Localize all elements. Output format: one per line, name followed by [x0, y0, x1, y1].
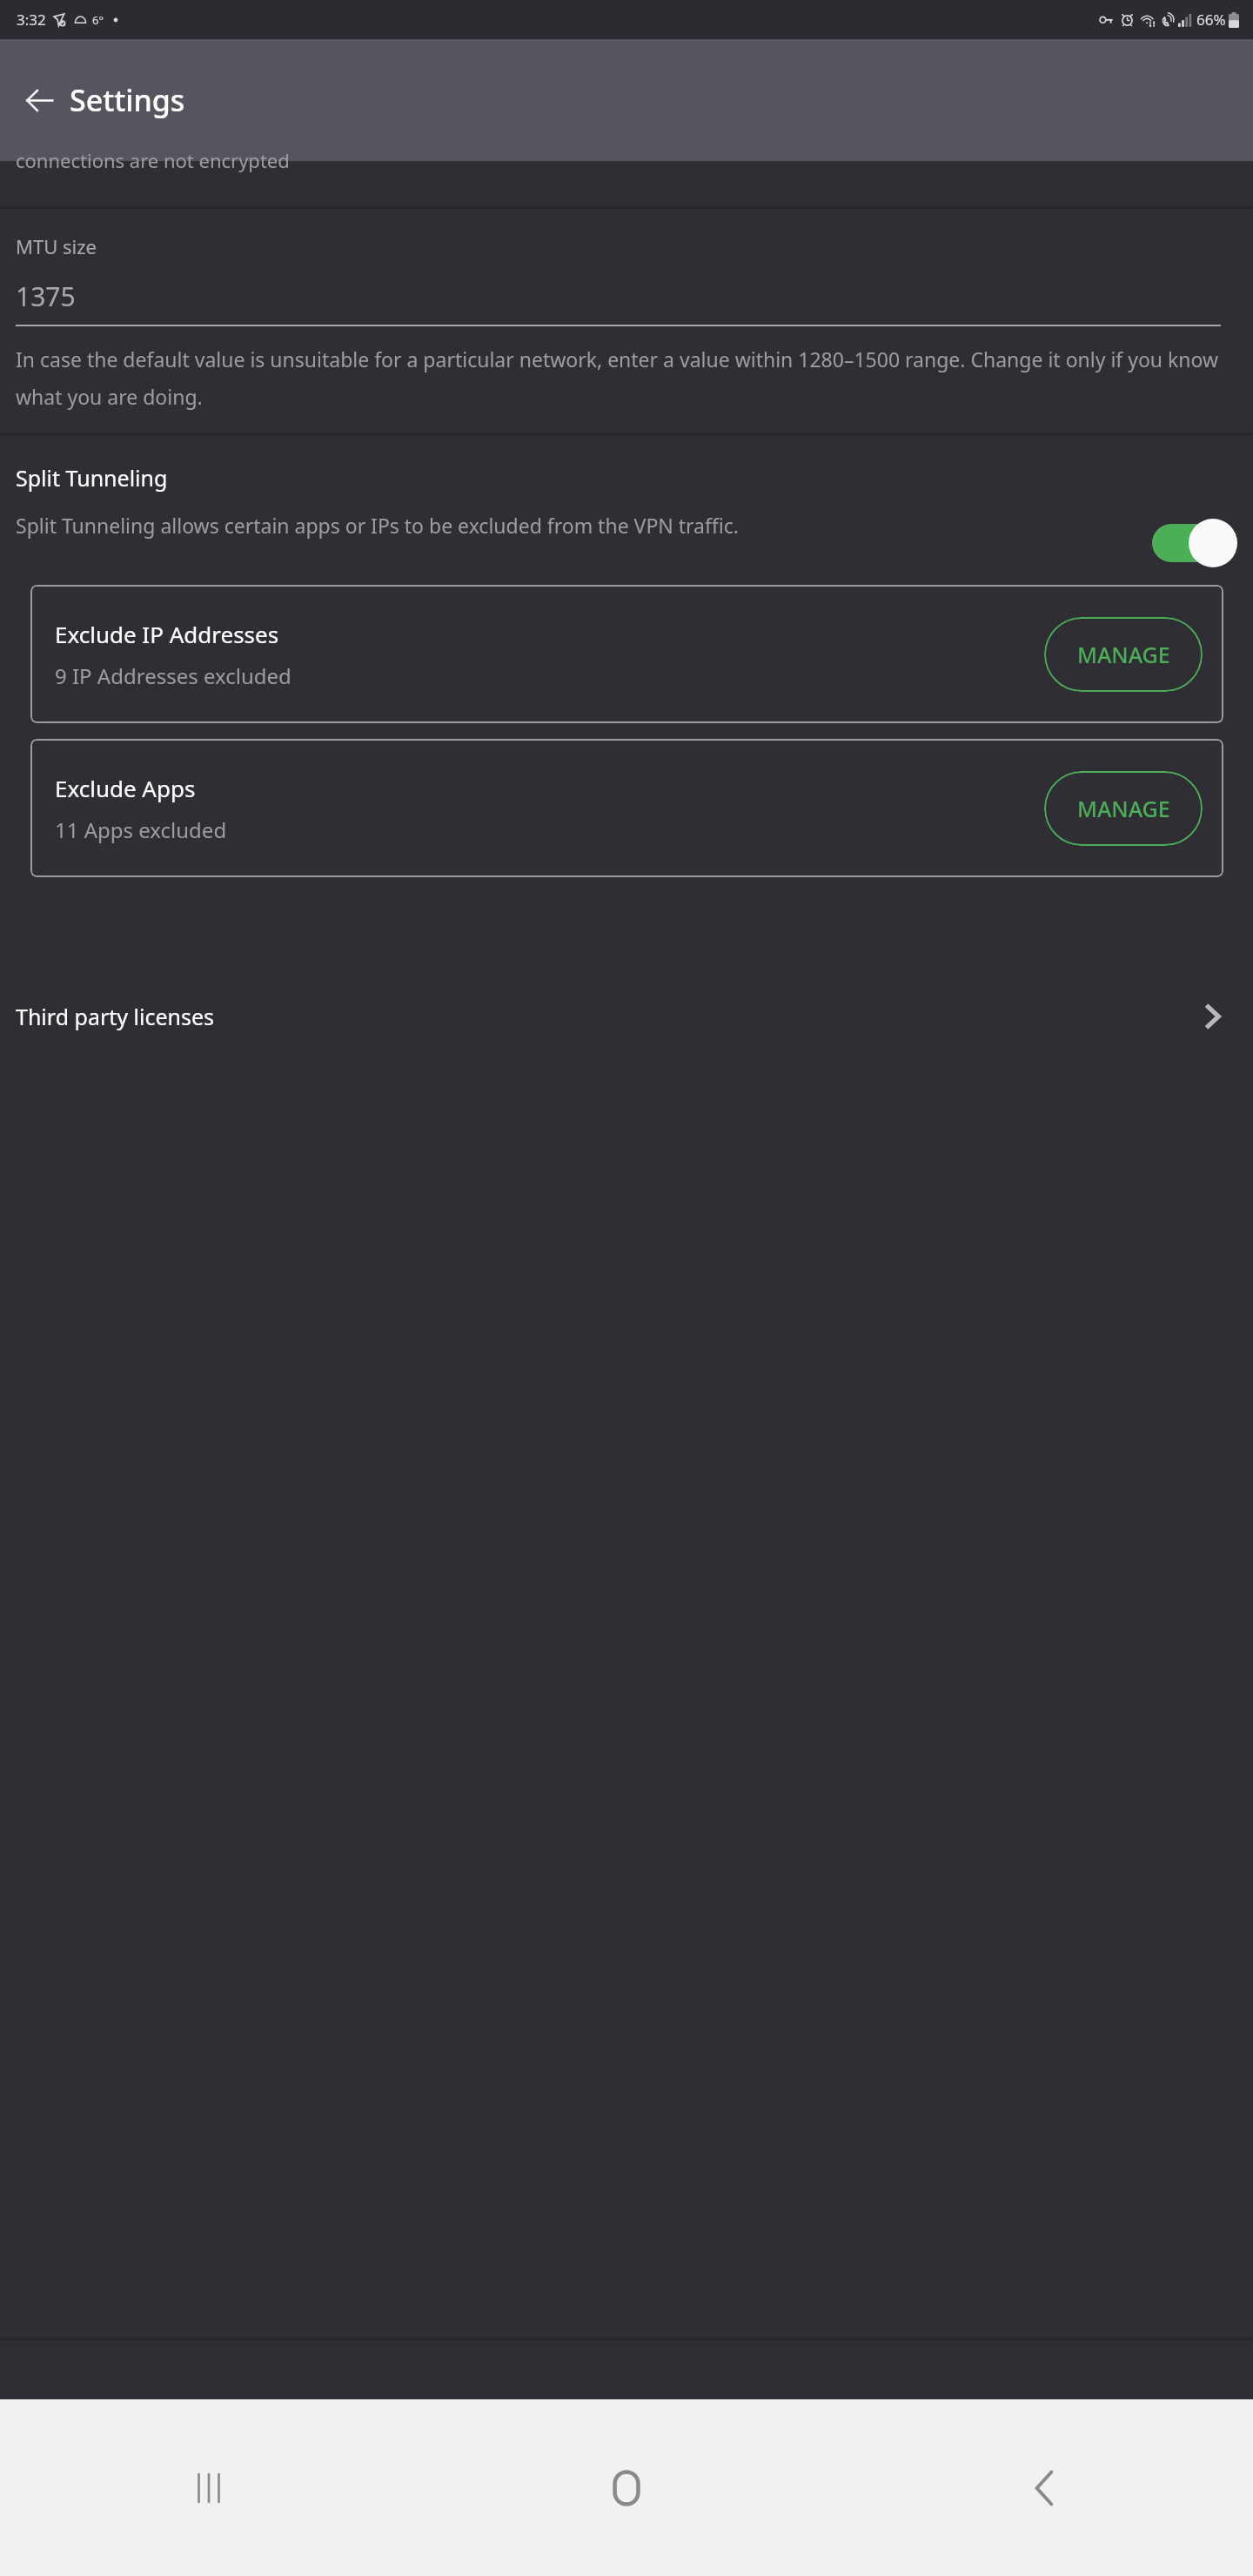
button[interactable]: Split Tunneling toggle — [1150, 519, 1237, 567]
staticText: MANAGE — [1077, 794, 1170, 823]
button[interactable]: MANAGE — [1044, 617, 1203, 692]
button[interactable]: Recent apps — [0, 2399, 418, 2576]
staticText: 9 IP Addresses excluded — [55, 661, 291, 690]
staticText: 11 Apps excluded — [55, 815, 227, 844]
button[interactable]: Exclude IP Addresses — [30, 585, 1223, 723]
staticText: In case the default value is unsuitable … — [16, 345, 1237, 410]
staticText: Exclude Apps — [55, 773, 196, 803]
button[interactable]: Exclude Apps — [30, 739, 1223, 877]
staticText: Exclude IP Addresses — [55, 619, 279, 649]
button[interactable]: Navigate up — [9, 70, 70, 131]
staticText: connections are not encrypted — [16, 147, 290, 173]
staticText: MANAGE — [1077, 640, 1170, 669]
staticText: 1375 — [16, 278, 76, 314]
button[interactable]: Third party licenses — [0, 964, 1253, 1069]
staticText: Split Tunneling allows certain apps or I… — [16, 512, 1124, 539]
button[interactable]: Back — [835, 2399, 1253, 2576]
staticText: Third party licenses — [16, 1002, 1196, 1031]
staticText: 66% — [1196, 10, 1226, 30]
button[interactable]: MANAGE — [1044, 771, 1203, 846]
staticText: MTU size — [16, 233, 97, 259]
button[interactable]: Home — [418, 2399, 835, 2576]
button[interactable]: 1375 — [16, 278, 1237, 326]
staticText: 6° — [92, 12, 104, 28]
staticText: Settings — [70, 80, 185, 120]
staticText: Split Tunneling — [16, 463, 168, 493]
staticText: 3:32 — [17, 10, 46, 30]
